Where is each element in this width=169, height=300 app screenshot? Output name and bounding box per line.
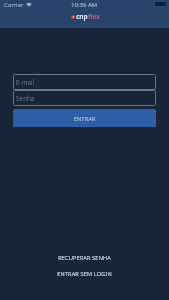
button[interactable]: Senha bbox=[13, 90, 156, 106]
staticText: Senha bbox=[16, 94, 35, 103]
button[interactable]: ENTRAR SEM LOGIN bbox=[45, 267, 124, 281]
button[interactable]: ENTRAR bbox=[13, 109, 156, 127]
other: Battery bbox=[155, 2, 166, 6]
staticText: ENTRAR SEM LOGIN bbox=[57, 270, 112, 278]
button[interactable]: E-mail bbox=[13, 74, 156, 90]
button[interactable]: RECUPERAR SENHA bbox=[46, 251, 123, 265]
other: Wi-Fi signal bbox=[26, 2, 32, 8]
staticText: cnp bbox=[76, 12, 88, 21]
staticText: ENTRAR bbox=[74, 115, 96, 122]
staticText: flex bbox=[88, 12, 101, 21]
staticText: RECUPERAR SENHA bbox=[58, 254, 111, 262]
staticText: Carrier bbox=[4, 1, 24, 9]
staticText: 10:36 AM bbox=[71, 1, 98, 9]
staticText: E-mail bbox=[16, 78, 34, 87]
